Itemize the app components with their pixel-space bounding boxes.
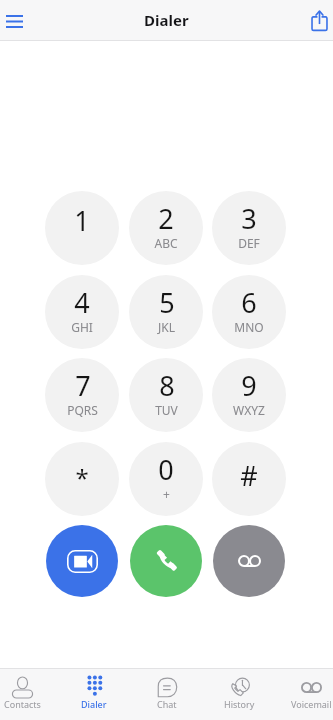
button[interactable]: Voicemail [213,525,285,597]
button[interactable]: 7 [45,358,119,432]
button[interactable]: 2 [129,191,203,265]
staticText: 4 [74,284,90,321]
button[interactable]: 1 [45,191,119,265]
staticText: 3 [241,200,257,237]
staticText: TUV [155,402,178,418]
button[interactable]: Menu [0,2,29,38]
staticText: # [240,457,258,494]
button[interactable]: Dialer [72,669,116,720]
button[interactable]: Voicemail [289,669,333,720]
staticText: + [163,486,170,502]
staticText: Contacts [4,698,41,710]
staticText: Chat [157,698,177,710]
button[interactable]: 0 [129,442,203,516]
staticText: 1 [74,202,90,239]
staticText: 7 [75,367,91,404]
staticText: 9 [241,367,257,404]
button[interactable]: Chat [145,669,189,720]
staticText: 5 [159,284,175,321]
button[interactable]: 8 [129,358,203,432]
staticText: PQRS [67,402,98,418]
button[interactable]: * [45,442,119,516]
staticText: ABC [154,235,178,251]
staticText: 0 [158,451,174,488]
staticText: History [224,698,255,710]
button[interactable]: 3 [212,191,286,265]
staticText: 8 [159,367,175,404]
staticText: Dialer [144,10,189,30]
button[interactable]: Contacts [0,669,44,720]
button[interactable]: Share [303,2,333,38]
staticText: DEF [238,235,260,251]
button[interactable]: 5 [129,275,203,349]
button[interactable]: 9 [212,358,286,432]
button[interactable]: Video call [46,525,118,597]
staticText: Dialer [81,698,107,710]
staticText: WXYZ [233,402,265,418]
button[interactable]: History [217,669,261,720]
staticText: Voicemail [291,698,332,710]
button[interactable]: 6 [212,275,286,349]
staticText: GHI [71,319,93,335]
staticText: JKL [158,319,175,335]
button[interactable]: Call [130,525,202,597]
button[interactable]: # [212,442,286,516]
staticText: 2 [158,200,174,237]
button[interactable]: 4 [45,275,119,349]
staticText: 6 [241,284,257,321]
staticText: * [75,461,89,494]
staticText: MNO [234,319,264,335]
